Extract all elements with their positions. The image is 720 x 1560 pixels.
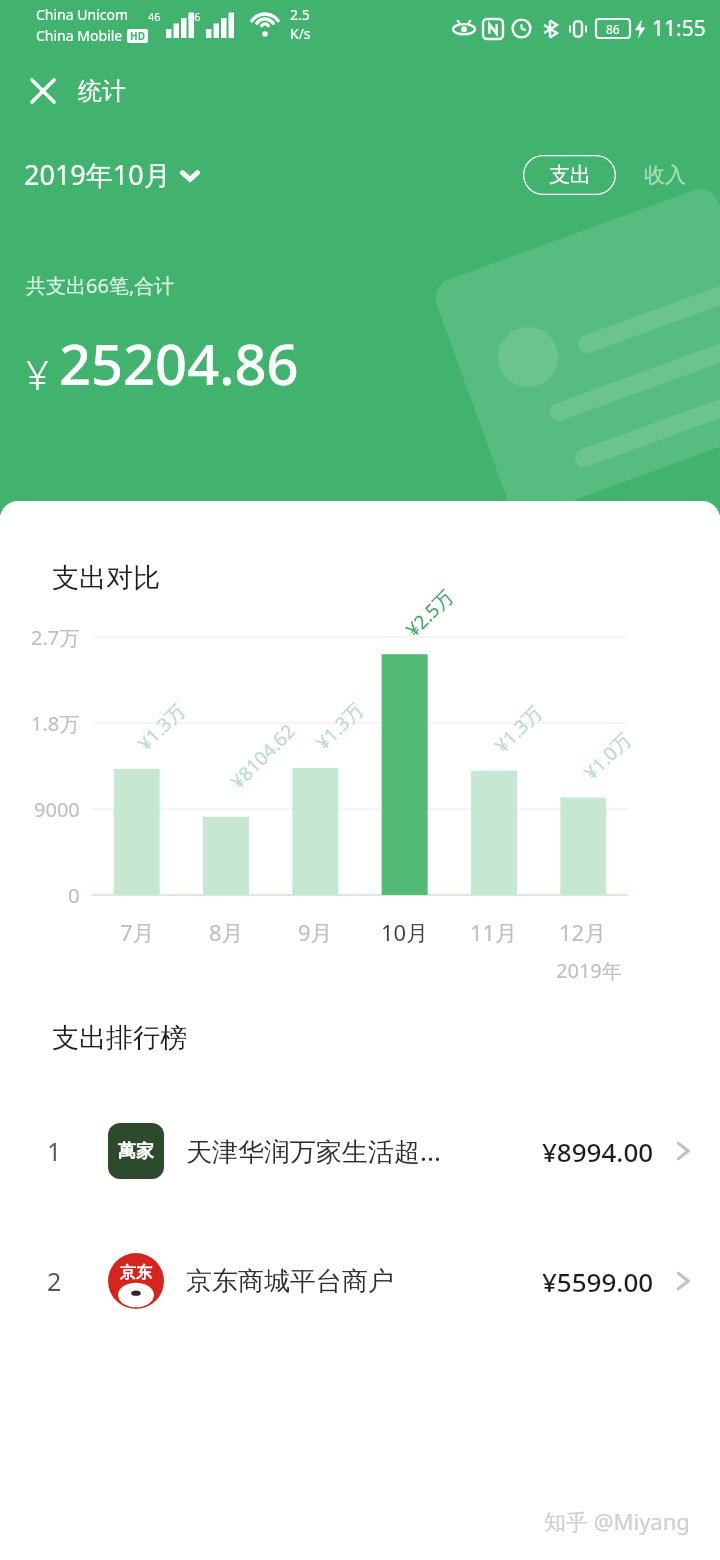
staticText: 1.8万 xyxy=(31,710,80,737)
staticText: ¥ xyxy=(26,347,49,401)
staticText: 共支出66笔,合计 xyxy=(26,272,175,299)
staticText: 知乎 @Miyang xyxy=(544,1506,690,1536)
staticText: China Unicom xyxy=(36,5,129,24)
staticText: 46 xyxy=(148,9,161,24)
staticText: K/s xyxy=(290,24,311,43)
staticText: HD xyxy=(130,29,145,43)
staticText: ¥5599.00 xyxy=(542,1264,654,1299)
staticText: ¥1.3万 xyxy=(489,700,548,758)
button[interactable]: Close xyxy=(18,66,68,116)
button[interactable]: 2 xyxy=(0,1245,720,1317)
button[interactable]: 支出 xyxy=(523,155,616,195)
staticText: ¥1.3万 xyxy=(310,697,369,755)
staticText: 京东 xyxy=(120,1263,152,1283)
staticText: China Mobile xyxy=(36,26,123,45)
button[interactable]: 2019年10月 xyxy=(24,150,200,199)
staticText: 收入 xyxy=(644,162,686,188)
staticText: 8月 xyxy=(209,917,244,947)
staticText: 支出对比 xyxy=(52,561,160,595)
staticText: 天津华润万家生活超... xyxy=(186,1133,542,1169)
staticText: 1 xyxy=(47,1134,62,1168)
staticText: 7月 xyxy=(120,917,155,947)
staticText: 2 xyxy=(47,1264,62,1298)
staticText: 京东商城平台商户 xyxy=(186,1265,542,1298)
staticText: 2019年10月 xyxy=(24,156,171,193)
staticText: 11月 xyxy=(470,917,518,947)
staticText: 2019年 xyxy=(556,957,622,984)
staticText: 12月 xyxy=(559,917,607,947)
staticText: ¥1.3万 xyxy=(132,698,191,756)
staticText: 86 xyxy=(606,21,620,37)
staticText: ¥8104.62 xyxy=(225,718,301,794)
button[interactable]: 1 xyxy=(0,1115,720,1187)
staticText: 2.5 xyxy=(290,5,310,24)
staticText: 9000 xyxy=(34,796,80,823)
staticText: 46 xyxy=(188,9,201,24)
staticText: 2.7万 xyxy=(31,624,80,651)
staticText: ¥8994.00 xyxy=(542,1134,654,1169)
staticText: 萬家 xyxy=(118,1140,154,1163)
staticText: ¥1.0万 xyxy=(578,727,637,785)
staticText: 支出排行榜 xyxy=(52,1021,187,1055)
staticText: 0 xyxy=(68,882,80,909)
staticText: 支出 xyxy=(549,162,591,188)
staticText: ¥2.5万 xyxy=(400,584,459,642)
staticText: 统计 xyxy=(78,76,126,106)
staticText: 10月 xyxy=(381,917,429,947)
staticText: 9月 xyxy=(298,917,333,947)
staticText: 11:55 xyxy=(652,14,706,43)
button[interactable]: 收入 xyxy=(636,153,694,197)
staticText: 25204.86 xyxy=(59,325,299,401)
